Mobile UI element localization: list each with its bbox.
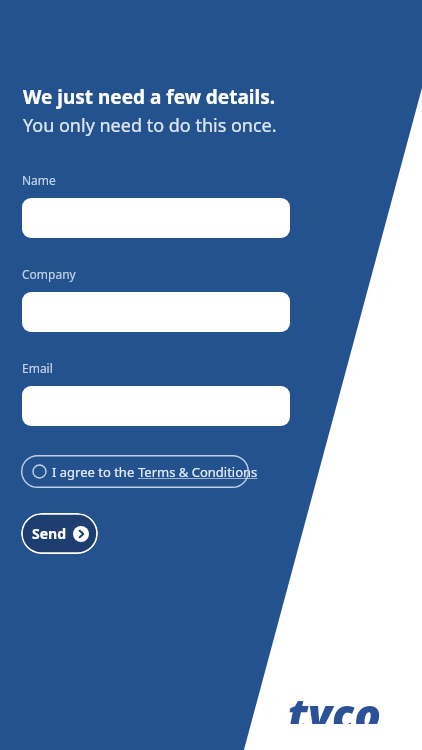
staticText: You only need to do this once. bbox=[23, 113, 277, 138]
button[interactable] bbox=[22, 198, 290, 238]
staticText: tyco bbox=[288, 684, 381, 724]
staticText: Name bbox=[22, 172, 56, 188]
button[interactable]: Send bbox=[21, 513, 98, 554]
staticText: I agree to the bbox=[52, 463, 138, 481]
staticText: We just need a few details. bbox=[23, 84, 276, 110]
staticText: Email bbox=[22, 360, 53, 376]
staticText: Send bbox=[32, 524, 67, 543]
other: tyco logo bbox=[288, 684, 402, 724]
button[interactable]: I agree to the bbox=[21, 455, 272, 488]
button[interactable] bbox=[22, 292, 290, 332]
staticText: Company bbox=[22, 266, 76, 282]
staticText: Terms & Conditions bbox=[138, 463, 258, 481]
button[interactable] bbox=[22, 386, 290, 426]
